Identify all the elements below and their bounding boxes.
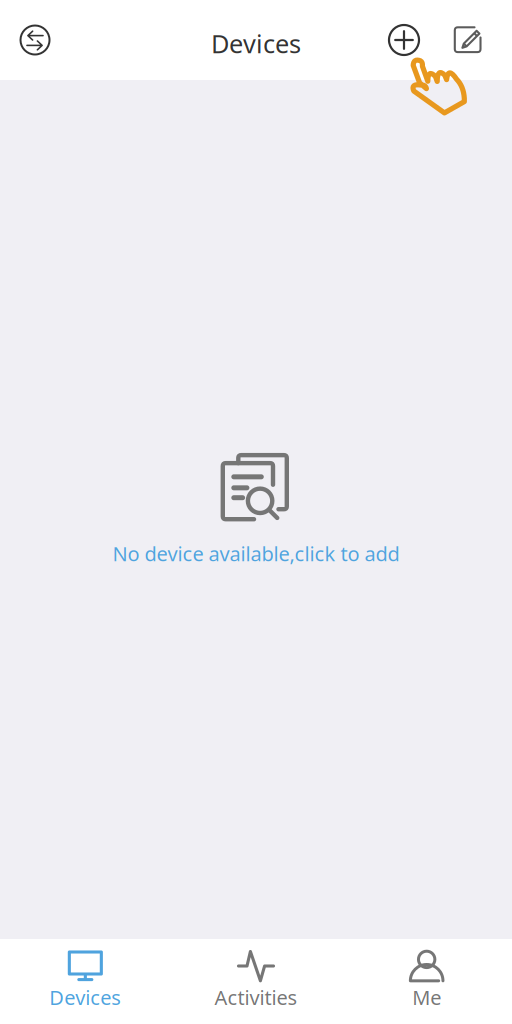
staticText: Activities — [214, 984, 297, 1011]
button[interactable]: Switch account — [0, 10, 64, 70]
staticText: Me — [412, 984, 441, 1011]
button[interactable]: No device available,click to add — [102, 536, 409, 571]
button[interactable]: Me — [341, 939, 512, 1024]
button[interactable]: Activities — [171, 939, 341, 1024]
staticText: Devices — [49, 984, 121, 1011]
staticText: Devices — [211, 27, 301, 60]
button[interactable]: Edit — [440, 10, 512, 70]
button[interactable]: Devices — [0, 939, 171, 1024]
button[interactable]: Add device — [368, 10, 440, 70]
staticText: No device available,click to add — [112, 540, 399, 567]
